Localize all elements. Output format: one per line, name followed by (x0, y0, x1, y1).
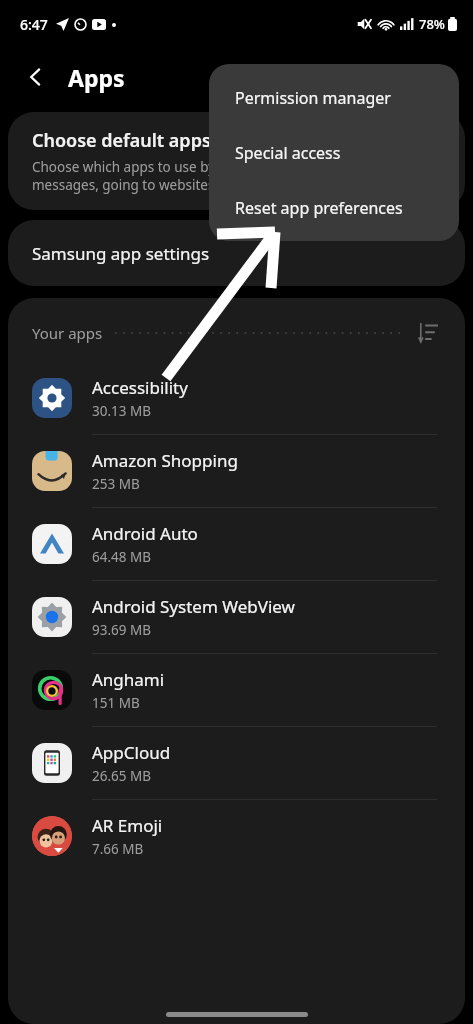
staticText: Accessibility (92, 376, 188, 399)
button[interactable]: AR Emoji (8, 800, 465, 872)
staticText: 64.48 MB (92, 548, 152, 566)
staticText: Choose default apps (32, 128, 211, 153)
staticText: 26.65 MB (92, 767, 152, 785)
button[interactable]: Reset app preferences (209, 180, 459, 235)
staticText: 78% (419, 15, 445, 33)
staticText: Samsung app settings (32, 242, 210, 265)
staticText: Anghami (92, 668, 165, 691)
staticText: Your apps (32, 323, 103, 343)
button[interactable]: Choose default apps (8, 112, 465, 210)
staticText: AppCloud (92, 741, 171, 764)
button[interactable]: Back (14, 55, 58, 99)
staticText: 93.69 MB (92, 621, 152, 639)
button[interactable]: Permission manager (209, 70, 459, 125)
staticText: 253 MB (92, 475, 140, 493)
staticText: Amazon Shopping (92, 449, 238, 472)
button[interactable]: AppCloud (8, 727, 465, 800)
button[interactable]: Special access (209, 125, 459, 180)
button[interactable]: Android Auto (8, 508, 465, 581)
staticText: 30.13 MB (92, 402, 152, 420)
staticText: Choose which apps to use by default for … (32, 158, 287, 194)
staticText: 151 MB (92, 694, 140, 712)
staticText: Permission manager (235, 87, 391, 109)
button[interactable]: Accessibility (8, 362, 465, 435)
staticText: Android Auto (92, 522, 198, 545)
staticText: Special access (235, 142, 341, 164)
button[interactable]: Sort (415, 320, 441, 346)
staticText: 6:47 (20, 15, 48, 34)
staticText: Reset app preferences (235, 197, 403, 219)
staticText: Apps (68, 62, 125, 93)
staticText: AR Emoji (92, 814, 163, 837)
button[interactable]: Android System WebView (8, 581, 465, 654)
staticText: 7.66 MB (92, 840, 144, 858)
button[interactable]: Samsung app settings (8, 220, 465, 286)
button[interactable]: Anghami (8, 654, 465, 727)
staticText: Android System WebView (92, 595, 295, 618)
button[interactable]: Amazon Shopping (8, 435, 465, 508)
